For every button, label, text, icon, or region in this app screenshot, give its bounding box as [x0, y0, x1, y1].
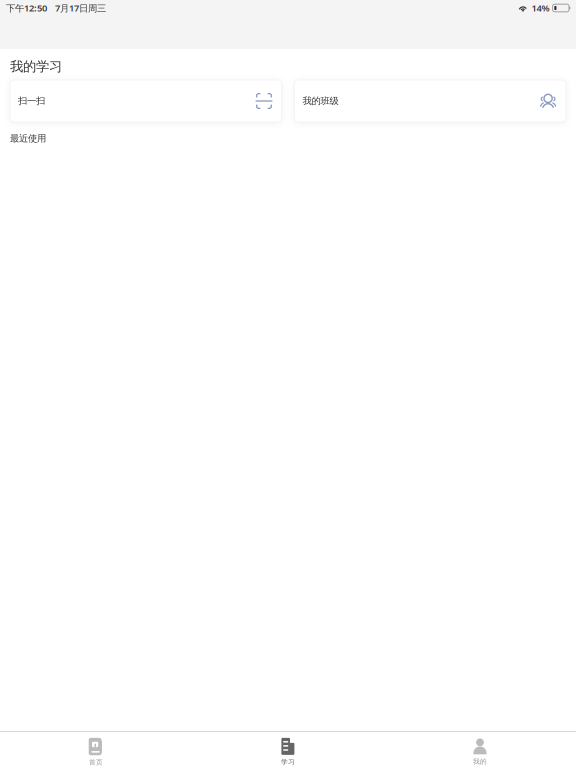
button[interactable]: 学习: [192, 732, 384, 768]
button[interactable]: 扫一扫: [10, 80, 281, 122]
staticText: 我的班级: [302, 95, 338, 107]
staticText: 下午12:50: [6, 2, 47, 14]
staticText: 扫一扫: [18, 95, 45, 107]
staticText: 最近使用: [10, 133, 46, 144]
button[interactable]: 我的: [384, 732, 576, 768]
staticText: 首页: [89, 758, 103, 766]
button[interactable]: 我的班级: [294, 80, 566, 122]
staticText: 我的学习: [10, 58, 62, 75]
button[interactable]: 首页: [0, 732, 192, 768]
staticText: 14%: [532, 2, 550, 14]
staticText: 我的: [473, 757, 487, 766]
staticText: 学习: [281, 758, 295, 766]
staticText: 7月17日周三: [55, 2, 106, 14]
